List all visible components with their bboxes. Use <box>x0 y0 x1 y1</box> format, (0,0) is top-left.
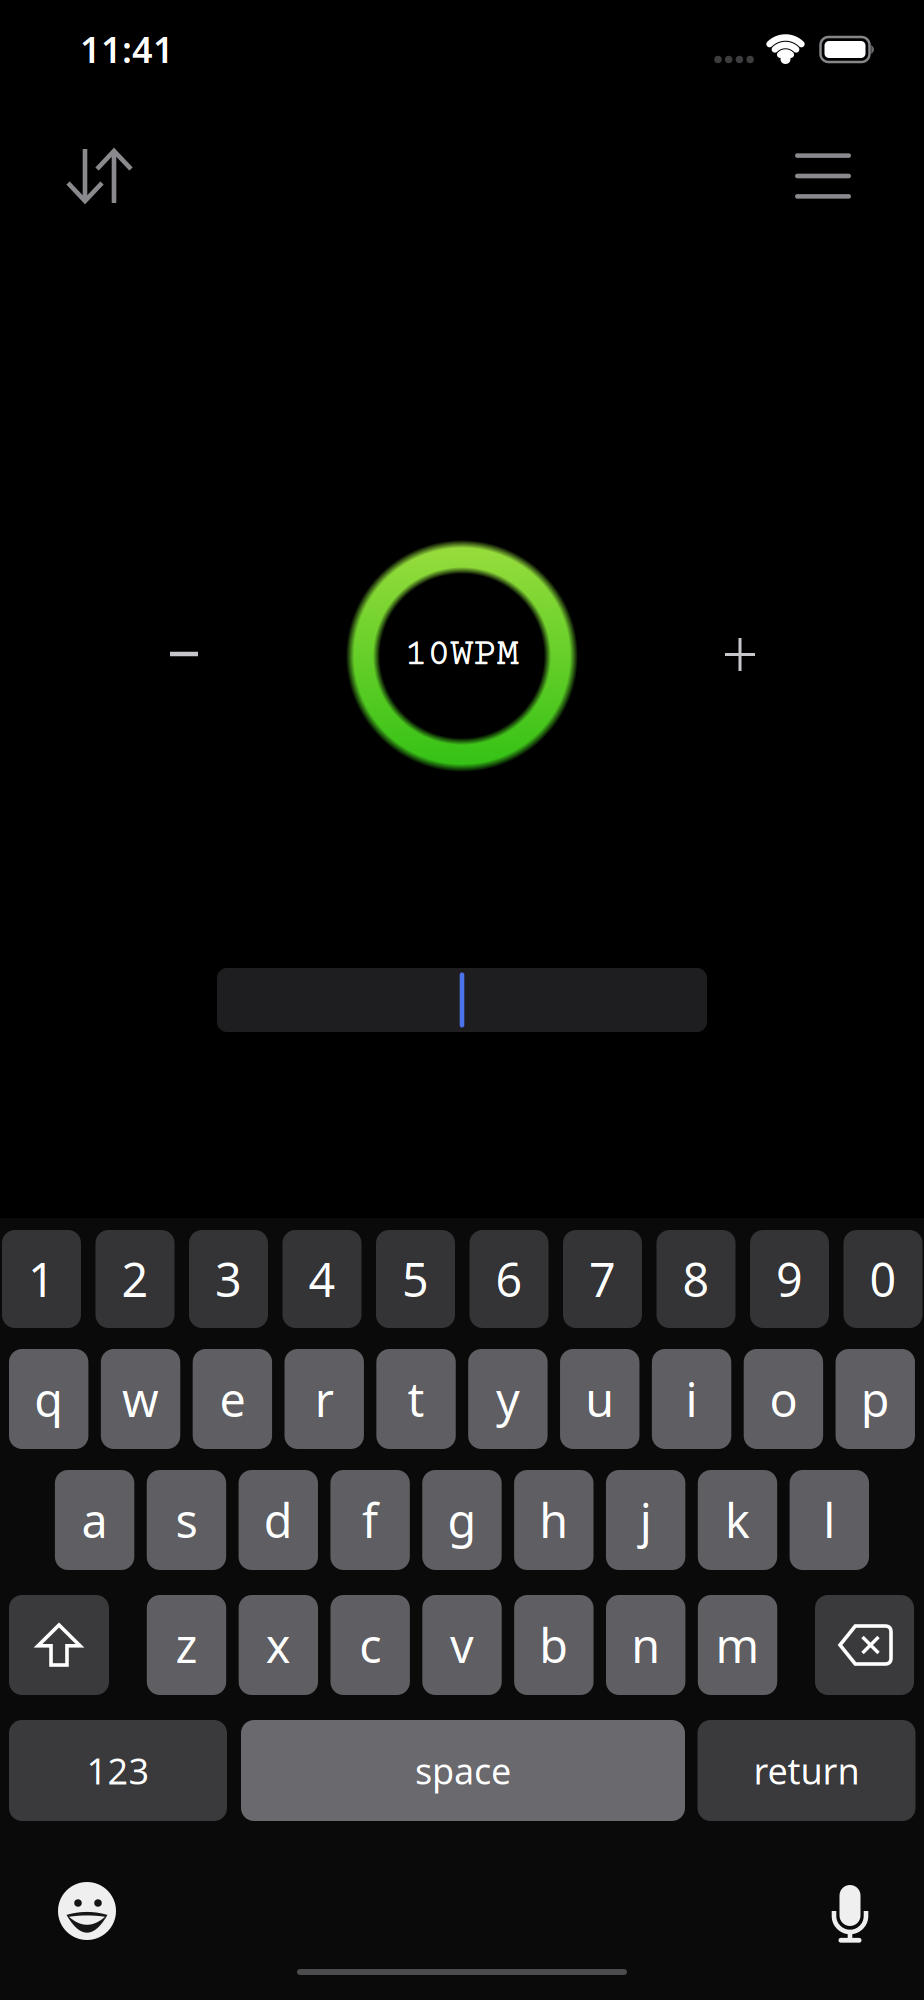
staticText: x <box>266 1614 291 1676</box>
button[interactable]: Delete <box>815 1595 914 1695</box>
button[interactable]: c <box>330 1595 410 1695</box>
staticText: w <box>122 1368 159 1430</box>
button[interactable]: return <box>697 1720 915 1821</box>
staticText: y <box>496 1368 520 1430</box>
button[interactable]: Decrease speed <box>148 630 220 678</box>
staticText: 6 <box>495 1248 522 1310</box>
button[interactable]: x <box>239 1595 318 1695</box>
button[interactable]: 9 <box>750 1230 829 1328</box>
button[interactable]: Menu <box>781 139 865 213</box>
staticText: q <box>34 1368 63 1430</box>
button[interactable]: 6 <box>469 1230 548 1328</box>
staticText: 1 <box>28 1248 55 1310</box>
button[interactable]: m <box>698 1595 777 1695</box>
button[interactable]: 8 <box>656 1230 735 1328</box>
staticText: 123 <box>86 1747 149 1794</box>
staticText: m <box>715 1614 759 1676</box>
button[interactable]: Increase speed <box>705 618 775 691</box>
staticText: s <box>175 1489 197 1551</box>
button[interactable]: 2 <box>95 1230 174 1328</box>
button[interactable]: w <box>101 1349 180 1449</box>
button[interactable]: q <box>9 1349 88 1449</box>
button[interactable]: 4 <box>282 1230 361 1328</box>
button[interactable]: b <box>514 1595 594 1695</box>
staticText: v <box>450 1614 474 1676</box>
button[interactable]: Emoji <box>46 1870 128 1952</box>
button[interactable]: g <box>422 1470 502 1570</box>
button[interactable]: 5 <box>376 1230 455 1328</box>
button[interactable]: space <box>241 1720 685 1821</box>
button[interactable]: r <box>284 1349 364 1449</box>
button[interactable]: o <box>744 1349 823 1449</box>
staticText: a <box>82 1489 108 1551</box>
staticText: space <box>415 1747 511 1794</box>
staticText: 5 <box>402 1248 429 1310</box>
staticText: 9 <box>776 1248 803 1310</box>
staticText: t <box>408 1368 425 1430</box>
staticText: z <box>175 1614 197 1676</box>
button[interactable]: Shift <box>9 1595 109 1695</box>
button[interactable]: a <box>55 1470 134 1570</box>
staticText: return <box>753 1747 859 1794</box>
staticText: 4 <box>308 1248 335 1310</box>
staticText: c <box>359 1614 381 1676</box>
staticText: i <box>686 1368 698 1430</box>
button[interactable]: 3 <box>189 1230 268 1328</box>
staticText: 7 <box>589 1248 616 1310</box>
button[interactable]: i <box>652 1349 731 1449</box>
button[interactable]: h <box>514 1470 593 1570</box>
button[interactable]: n <box>606 1595 685 1695</box>
button[interactable]: y <box>468 1349 548 1449</box>
staticText: j <box>640 1489 652 1551</box>
button[interactable]: f <box>330 1470 410 1570</box>
button[interactable]: Text input <box>217 968 707 1032</box>
staticText: g <box>447 1489 476 1551</box>
staticText: b <box>539 1614 568 1676</box>
button[interactable]: t <box>376 1349 456 1449</box>
button[interactable]: 123 <box>9 1720 227 1821</box>
button[interactable]: j <box>606 1470 685 1570</box>
button[interactable]: Dictation <box>816 1872 884 1956</box>
button[interactable]: e <box>193 1349 272 1449</box>
staticText: 11:41 <box>80 25 174 73</box>
button[interactable]: z <box>147 1595 226 1695</box>
button[interactable]: d <box>239 1470 318 1570</box>
button[interactable]: Swap <box>53 133 147 219</box>
staticText: 3 <box>215 1248 242 1310</box>
button[interactable]: 1 <box>2 1230 81 1328</box>
staticText: u <box>585 1368 614 1430</box>
staticText: f <box>362 1489 378 1551</box>
button[interactable]: k <box>698 1470 777 1570</box>
staticText: k <box>725 1489 750 1551</box>
staticText: 0 <box>869 1248 896 1310</box>
button[interactable]: 0 <box>843 1230 922 1328</box>
staticText: 8 <box>682 1248 709 1310</box>
staticText: d <box>264 1489 293 1551</box>
staticText: n <box>631 1614 660 1676</box>
button[interactable]: s <box>147 1470 226 1570</box>
staticText: 10WPM <box>404 635 519 677</box>
staticText: 2 <box>121 1248 148 1310</box>
button[interactable]: 7 <box>563 1230 642 1328</box>
staticText: o <box>769 1368 797 1430</box>
staticText: l <box>823 1489 835 1551</box>
staticText: p <box>861 1368 890 1430</box>
staticText: e <box>219 1368 245 1430</box>
staticText: h <box>539 1489 568 1551</box>
button[interactable]: p <box>836 1349 915 1449</box>
button[interactable]: u <box>560 1349 639 1449</box>
button[interactable]: v <box>422 1595 502 1695</box>
staticText: r <box>315 1368 334 1430</box>
button[interactable]: l <box>790 1470 869 1570</box>
